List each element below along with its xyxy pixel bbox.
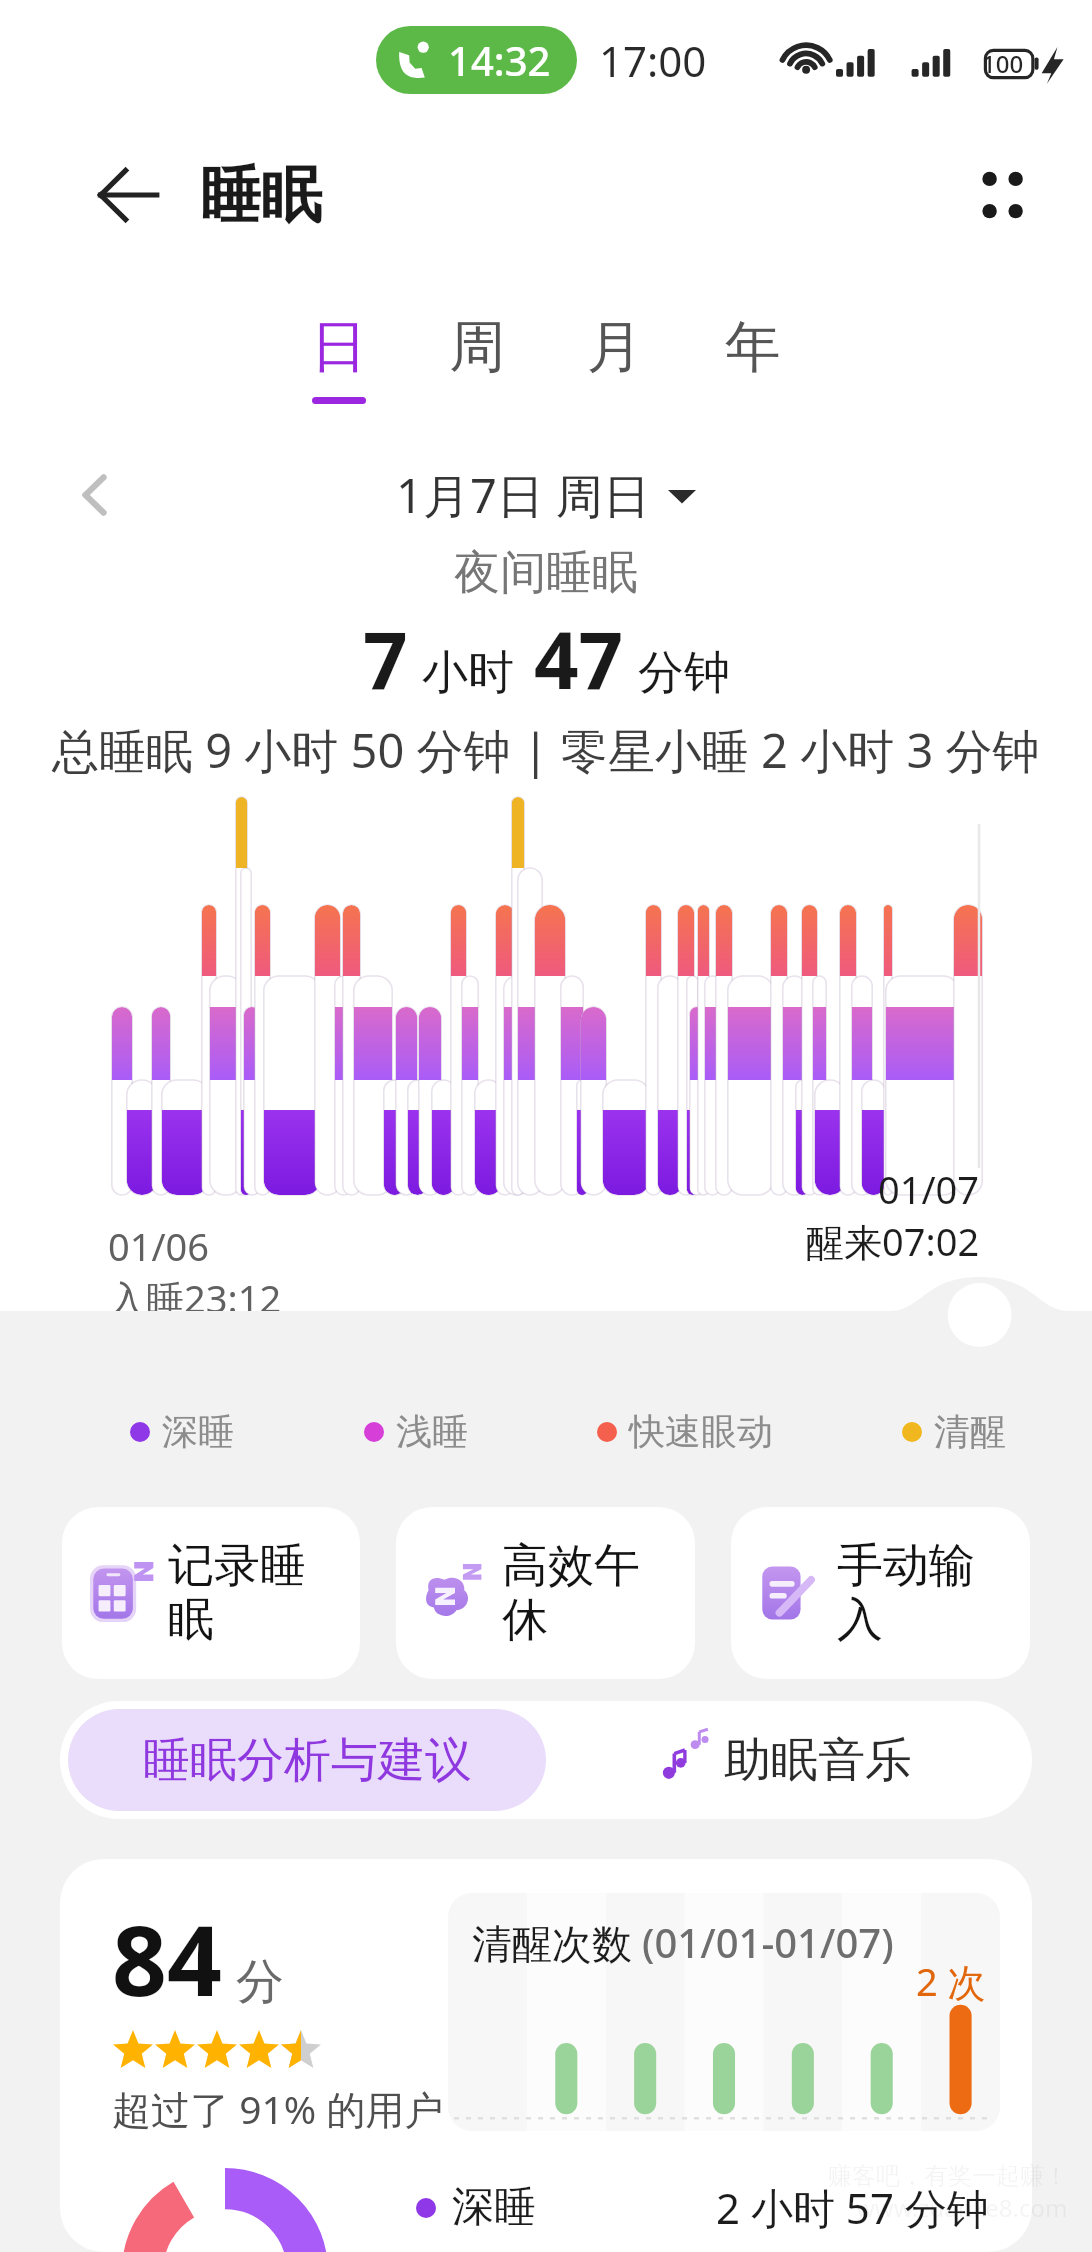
button[interactable]: 手动输 入 [731, 1507, 1030, 1679]
staticText: 小时 [422, 644, 514, 702]
staticText: 超过了 91% 的用户 [112, 2082, 444, 2135]
staticText: 分 [236, 1952, 284, 2012]
staticText: 1月7日 周日 [396, 463, 650, 527]
staticText: 月 [587, 312, 643, 383]
staticText: 浅睡 [396, 1409, 468, 1454]
button[interactable]: 84 [60, 1859, 1032, 2252]
button[interactable]: 周 [408, 312, 546, 442]
staticText: 2 次 [916, 1955, 986, 2007]
staticText: 17:00 [599, 32, 707, 89]
staticText: 14:32 [448, 33, 551, 87]
staticText: 清醒次数 [472, 1919, 632, 1969]
staticText: 赚客吧，有奖一起赚！ [828, 2161, 1068, 2191]
staticText: 醒来07:02 [806, 1215, 980, 1267]
staticText: 睡眠 [200, 157, 322, 234]
staticText: 总睡眠 9 小时 50 分钟 | 零星小睡 2 小时 3 分钟 [52, 718, 1040, 782]
staticText: 01/06 [108, 1220, 210, 1272]
staticText: 深睡 [452, 2181, 536, 2234]
staticText: www.zuanke8.com [856, 2191, 1068, 2224]
staticText: 手动输 入 [837, 1537, 975, 1649]
button[interactable]: 睡眠分析与建议 [68, 1709, 546, 1811]
staticText: 分钟 [638, 644, 730, 702]
staticText: 深睡 [162, 1409, 234, 1454]
button[interactable]: 高效午 休 [396, 1507, 695, 1679]
button[interactable]: 1月7日 周日 [396, 463, 696, 527]
staticText: 2 小时 57 分钟 [716, 2179, 989, 2236]
staticText: 助眠音乐 [724, 1731, 912, 1790]
staticText: 7 [363, 606, 408, 712]
staticText: 高效午 休 [502, 1537, 640, 1649]
button[interactable]: More options [954, 147, 1050, 243]
staticText: 日 [311, 312, 367, 383]
staticText: 84 [112, 1893, 222, 2024]
button[interactable]: 月 [546, 312, 684, 442]
button[interactable]: 记录睡 眠 [62, 1507, 360, 1679]
staticText: 记录睡 眠 [168, 1537, 306, 1649]
button[interactable]: 年 [684, 312, 822, 442]
staticText: 周 [449, 312, 505, 383]
button[interactable]: Back [80, 147, 176, 243]
button[interactable]: Previous day [56, 455, 136, 535]
staticText: (01/01-01/07) [642, 1915, 894, 1969]
staticText: 夜间睡眠 [454, 544, 638, 602]
staticText: 01/07 [878, 1163, 980, 1215]
staticText: 睡眠分析与建议 [143, 1731, 472, 1790]
staticText: 清醒 [934, 1409, 1006, 1454]
staticText: 年 [725, 312, 781, 383]
staticText: 入睡23:12 [108, 1272, 282, 1324]
staticText: 100 [982, 47, 1024, 80]
button[interactable]: 助眠音乐 [546, 1709, 1024, 1811]
staticText: 快速眼动 [629, 1409, 773, 1454]
button[interactable]: 日 [270, 312, 408, 442]
staticText: 47 [534, 606, 624, 712]
